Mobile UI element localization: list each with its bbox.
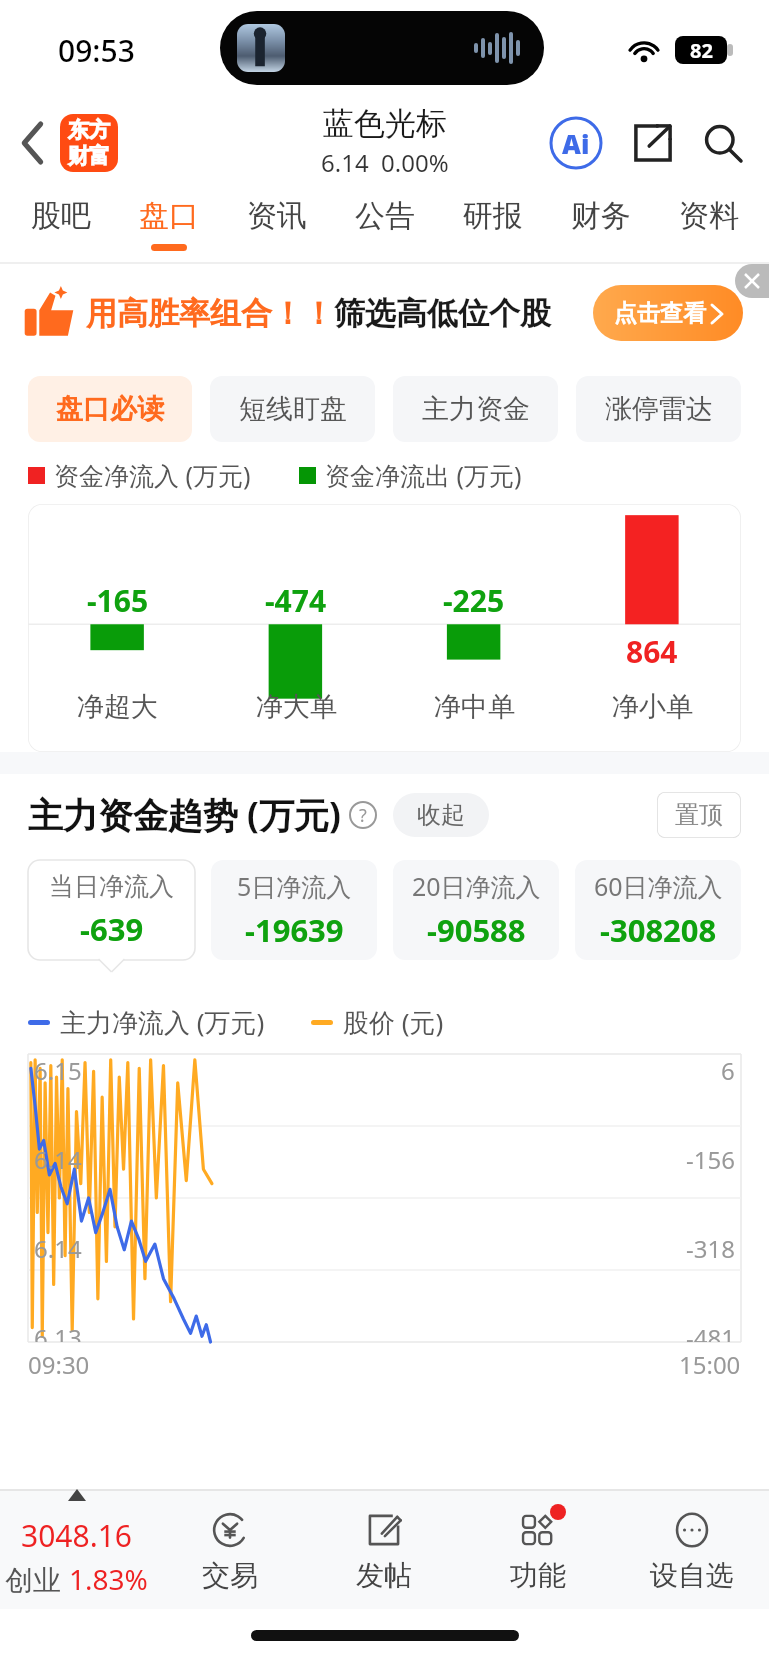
staticText: 盘口必读 [56,392,164,426]
button[interactable]: 资料 [655,186,763,262]
button[interactable]: Close ad [735,264,769,298]
staticText: 研报 [463,197,523,235]
staticText: 公告 [355,197,415,235]
staticText: 用高胜率组合！！ [86,294,334,333]
staticText: 6.14 [34,1143,82,1176]
button[interactable]: 20日净流入 [393,860,559,960]
staticText: 09:30 [28,1348,90,1381]
staticText: 置顶 [675,800,723,830]
staticText: 864 [626,631,678,672]
staticText: 点击查看 [614,299,706,328]
button[interactable]: AI assistant [549,116,603,170]
button[interactable]: Help [349,801,377,829]
staticText: 财富 [68,143,110,169]
staticText: 蓝色光标 [323,104,447,143]
staticText: 09:53 [58,30,135,71]
staticText: 财务 [571,197,631,235]
staticText: 资金净流出 (万元) [325,458,522,492]
button[interactable]: 收起 [393,793,489,837]
staticText: 主力资金趋势 (万元) [28,791,341,839]
staticText: 筛选高低位个股 [334,294,551,333]
staticText: 60日净流入 [594,869,723,903]
button[interactable]: 盘口必读 [28,376,192,442]
button[interactable]: 点击查看 [593,285,743,341]
staticText: 设自选 [650,1558,734,1593]
staticText: 收起 [417,800,465,830]
button[interactable]: 短线盯盘 [210,376,375,442]
button[interactable]: Search [699,119,747,167]
button[interactable]: 财务 [547,186,655,262]
button[interactable]: 交易 [153,1491,307,1609]
staticText: -19639 [245,909,344,951]
staticText: 功能 [510,1558,566,1593]
staticText: 净小单 [612,690,693,724]
staticText: 股吧 [31,197,91,235]
button[interactable]: 用高胜率组合！！ [0,264,769,362]
staticText: -225 [443,580,505,621]
staticText: 15:00 [679,1348,741,1381]
staticText: 资金净流入 (万元) [54,458,251,492]
button[interactable]: 主力资金 [393,376,558,442]
button[interactable]: 当日净流入 [28,860,195,960]
staticText: 净超大 [77,690,158,724]
staticText: 20日净流入 [412,869,541,903]
staticText: 盘口 [139,197,199,235]
staticText: 净大单 [256,690,337,724]
staticText: 6.13 [34,1321,82,1342]
button[interactable]: 功能 [461,1491,615,1609]
staticText: 82 [690,37,713,64]
staticText: ? [359,803,367,828]
staticText: -474 [265,580,327,621]
button[interactable]: Back [14,106,126,180]
staticText: 3048.16 [21,1515,132,1556]
staticText: 净中单 [434,690,515,724]
staticText: -156 [686,1143,735,1176]
staticText: 创业 [5,1560,69,1598]
button[interactable]: Share [629,119,677,167]
staticText: -90588 [427,909,526,951]
button[interactable]: 股吧 [6,186,115,262]
button[interactable]: 发帖 [307,1491,461,1609]
staticText: -318 [686,1232,735,1265]
staticText: -308208 [600,909,717,951]
button[interactable]: 设自选 [615,1491,769,1609]
staticText: 涨停雷达 [605,392,713,426]
staticText: 资讯 [247,197,307,235]
staticText: -481 [686,1321,735,1342]
staticText: 资料 [679,197,739,235]
staticText: 发帖 [356,1558,412,1593]
staticText: 5日净流入 [237,869,352,903]
staticText: 6.14 [34,1232,82,1265]
staticText: Ai [562,126,590,161]
staticText: -165 [87,580,149,621]
staticText: 主力净流入 (万元) [60,1004,265,1040]
staticText: 当日净流入 [49,871,174,902]
button[interactable]: 研报 [439,186,547,262]
button[interactable]: 5日净流入 [211,860,377,960]
staticText: 股价 (元) [343,1004,444,1040]
button[interactable]: 公告 [331,186,439,262]
staticText: 6.14 0.00% [321,146,449,179]
staticText: 主力资金 [422,392,530,426]
staticText: 6 [721,1054,735,1087]
staticText: 6.15 [34,1054,82,1087]
staticText: 1.83% [69,1560,148,1598]
button[interactable]: 资讯 [223,186,331,262]
button[interactable]: 盘口 [115,186,223,262]
button[interactable]: 置顶 [657,792,741,838]
staticText: 短线盯盘 [239,392,347,426]
button[interactable]: 60日净流入 [575,860,741,960]
staticText: 交易 [202,1558,258,1593]
staticText: -639 [80,908,144,950]
button[interactable]: 涨停雷达 [576,376,741,442]
staticText: 东方 [68,117,110,143]
button[interactable]: 3048.16 [0,1491,153,1609]
